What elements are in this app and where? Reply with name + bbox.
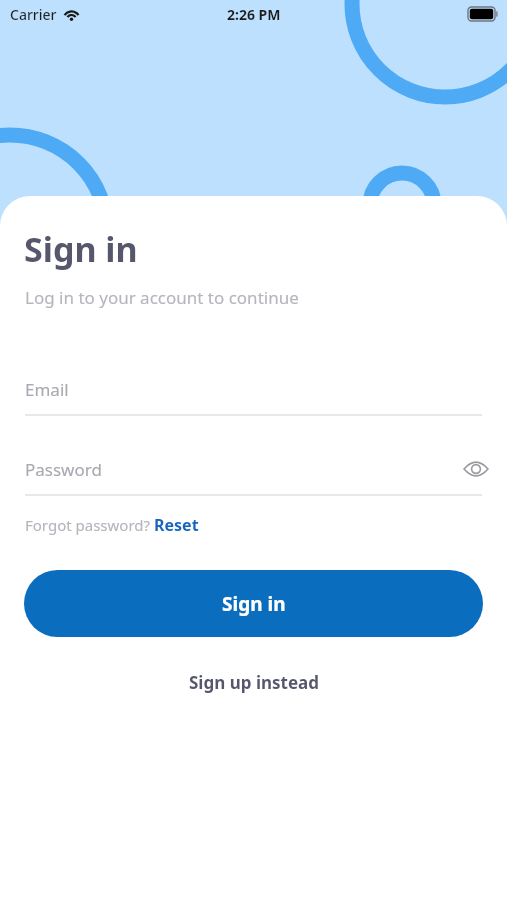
button[interactable]: Show password [459,452,493,486]
staticText: Email [25,378,69,401]
staticText: Log in to your account to continue [25,286,299,309]
staticText: Password [25,458,102,481]
button[interactable]: Forgot password? [25,514,199,536]
staticText: Sign in [24,226,138,272]
button[interactable]: Sign up instead [169,665,339,700]
staticText: 2:26 PM [227,5,281,24]
button[interactable]: Email [0,369,507,409]
button[interactable]: Sign in [24,570,483,637]
staticText: Sign in [222,591,286,617]
staticText: Reset [154,514,199,536]
staticText: Forgot password? [25,515,154,535]
button[interactable]: Password [0,449,507,489]
staticText: Carrier [10,5,57,24]
